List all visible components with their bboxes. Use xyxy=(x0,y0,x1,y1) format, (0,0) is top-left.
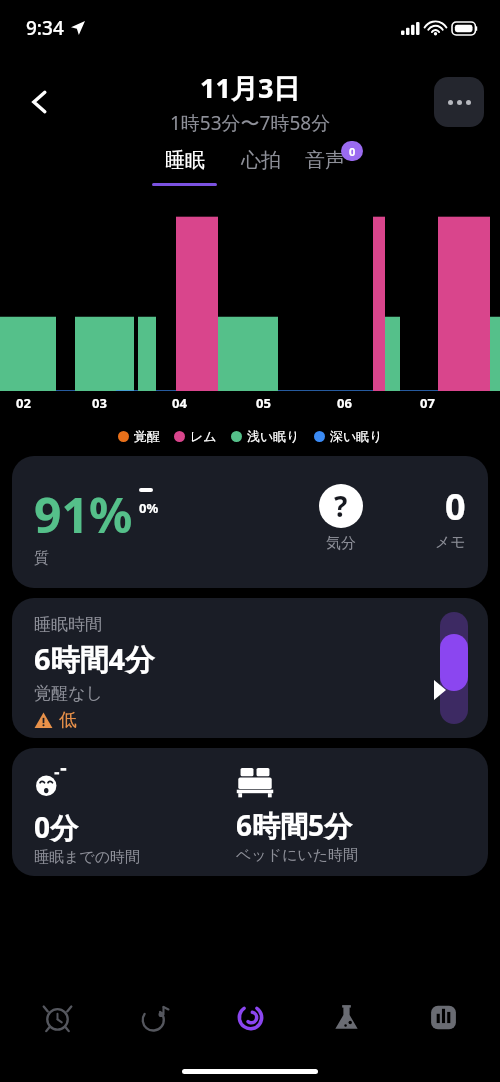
staticText: 02 xyxy=(16,394,31,412)
staticText: 91% xyxy=(34,482,133,547)
button[interactable]: Lab xyxy=(307,989,385,1045)
staticText: 06 xyxy=(337,394,352,412)
staticText: 04 xyxy=(172,394,187,412)
staticText: 1時53分〜7時58分 xyxy=(170,110,331,136)
staticText: 0 xyxy=(445,482,466,531)
staticText: レム xyxy=(190,428,217,444)
staticText: 6時間5分 xyxy=(236,806,353,844)
staticText: 覚醒 xyxy=(134,428,160,444)
staticText: 心拍 xyxy=(241,148,281,173)
staticText: 07 xyxy=(420,394,435,412)
button[interactable]: Alarm xyxy=(18,989,96,1045)
staticText: 05 xyxy=(256,394,271,412)
staticText: 0 xyxy=(349,144,356,159)
staticText: 0分 xyxy=(34,808,79,846)
button[interactable]: Stats xyxy=(404,989,482,1045)
staticText: 0% xyxy=(139,499,159,517)
button[interactable]: More options xyxy=(434,77,484,127)
staticText: 9:34 xyxy=(26,15,64,41)
button[interactable]: 91% xyxy=(12,456,488,588)
staticText: 浅い眠り xyxy=(247,428,300,444)
staticText: ? xyxy=(334,487,348,525)
staticText: 気分 xyxy=(326,534,356,553)
staticText: 6時間4分 xyxy=(34,639,155,679)
staticText: 音声 xyxy=(305,148,345,173)
staticText: 低 xyxy=(59,709,77,732)
staticText: 03 xyxy=(92,394,107,412)
button[interactable]: 睡眠 xyxy=(152,148,217,186)
button[interactable]: 0分 xyxy=(12,748,488,876)
staticText: 睡眠までの時間 xyxy=(34,848,141,867)
staticText: 11月3日 xyxy=(200,69,301,106)
staticText: メモ xyxy=(435,533,466,552)
staticText: 覚醒なし xyxy=(34,683,103,704)
button[interactable]: 音声 xyxy=(305,148,349,173)
button[interactable]: 心拍 xyxy=(235,148,287,173)
staticText: 質 xyxy=(34,549,49,568)
staticText: ベッドにいた時間 xyxy=(236,846,359,865)
button[interactable]: Back xyxy=(14,76,66,128)
staticText: 睡眠 xyxy=(165,148,205,173)
staticText: 深い眠り xyxy=(330,428,383,444)
button[interactable]: Sleep sounds xyxy=(115,989,193,1045)
staticText: 睡眠時間 xyxy=(34,614,102,635)
button[interactable]: 睡眠時間 xyxy=(12,598,488,738)
button[interactable]: Sleep tracking xyxy=(211,989,289,1045)
